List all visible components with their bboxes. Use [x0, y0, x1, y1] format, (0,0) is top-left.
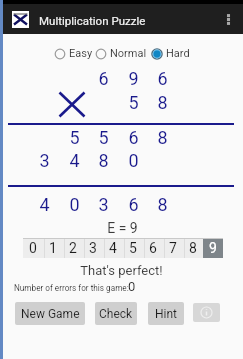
button[interactable]: Info — [193, 303, 220, 322]
button[interactable]: 1 — [43, 239, 63, 258]
staticText: 8 — [157, 127, 168, 148]
button[interactable]: 7 — [163, 239, 183, 258]
staticText: 0 — [69, 194, 80, 215]
staticText: 7 — [169, 240, 177, 256]
staticText: 4 — [69, 150, 80, 171]
staticText: 6 — [128, 194, 139, 215]
staticText: Easy — [69, 47, 93, 60]
button[interactable]: 0 — [23, 239, 43, 258]
staticText: 8 — [157, 92, 168, 113]
staticText: Multiplication Puzzle — [39, 14, 146, 27]
staticText: 5 — [129, 240, 137, 256]
button[interactable]: 6 — [143, 239, 163, 258]
staticText: 0 — [29, 240, 37, 256]
staticText: 4 — [109, 240, 117, 256]
staticText: Normal — [110, 47, 147, 60]
button[interactable]: Hard — [151, 47, 190, 60]
button[interactable]: Normal — [95, 47, 147, 60]
button[interactable]: 8 — [183, 239, 203, 258]
staticText: 5 — [98, 127, 109, 148]
staticText: 9 — [209, 240, 217, 256]
staticText: New Game — [21, 307, 80, 321]
staticText: 5 — [69, 127, 80, 148]
button[interactable]: 2 — [63, 239, 83, 258]
button[interactable]: Hint — [148, 302, 184, 325]
staticText: 4 — [39, 194, 50, 215]
staticText: 0 — [128, 279, 136, 294]
button[interactable]: Easy — [54, 47, 93, 60]
staticText: 2 — [69, 240, 77, 256]
button[interactable]: 3 — [83, 239, 103, 258]
staticText: 5 — [128, 92, 139, 113]
staticText: 8 — [189, 240, 197, 256]
staticText: 6 — [149, 240, 157, 256]
button[interactable]: 5 — [123, 239, 143, 258]
button[interactable]: 9 — [203, 239, 223, 258]
staticText: 8 — [98, 150, 109, 171]
staticText: Hint — [155, 307, 178, 321]
staticText: 8 — [157, 194, 168, 215]
button[interactable]: Check — [95, 302, 137, 325]
staticText: E = 9 — [1, 220, 243, 236]
staticText: 6 — [98, 68, 109, 89]
staticText: Hard — [166, 47, 190, 60]
button[interactable]: More options — [213, 4, 243, 34]
staticText: Check — [99, 307, 133, 321]
staticText: 3 — [89, 240, 97, 256]
staticText: 3 — [39, 150, 50, 171]
staticText: 1 — [49, 240, 57, 256]
staticText: 9 — [128, 68, 139, 89]
button[interactable]: New Game — [15, 302, 85, 325]
staticText: Number of errors for this game: — [14, 283, 129, 293]
button[interactable]: 4 — [103, 239, 123, 258]
staticText: That's perfect! — [0, 263, 243, 278]
staticText: 6 — [157, 68, 168, 89]
staticText: 0 — [128, 150, 139, 171]
staticText: 3 — [98, 194, 109, 215]
staticText: 6 — [128, 127, 139, 148]
